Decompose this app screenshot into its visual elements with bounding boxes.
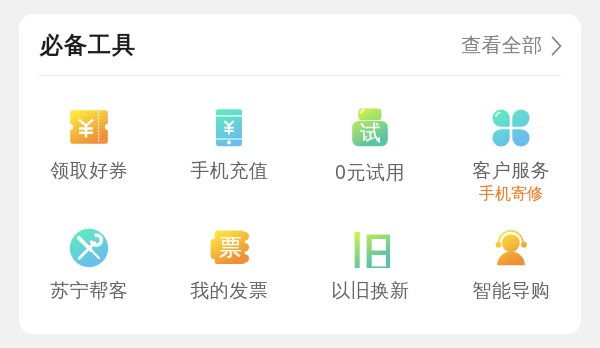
button[interactable]: 苏宁帮客 xyxy=(19,228,159,303)
button[interactable]: 查看全部 xyxy=(461,33,562,58)
other: 智能导购 xyxy=(491,228,531,268)
other: 0元试用 xyxy=(350,108,390,148)
staticText: 票 xyxy=(219,233,242,262)
button[interactable]: 手机充值 xyxy=(159,108,299,183)
button[interactable]: 以旧换新 xyxy=(299,228,440,303)
other: 以旧换新 xyxy=(350,228,390,268)
button[interactable]: 0元试用 xyxy=(299,108,440,185)
other: 手机充值 xyxy=(209,108,249,148)
staticText: 客户服务 xyxy=(472,159,550,183)
button[interactable]: 领取好券 xyxy=(19,108,159,183)
staticText: 查看全部 xyxy=(461,33,543,58)
staticText: 0元试用 xyxy=(335,159,405,185)
button[interactable]: 客户服务 xyxy=(440,108,581,204)
other: 我的发票 xyxy=(209,228,249,268)
staticText: 旧 xyxy=(350,228,390,268)
staticText: 领取好券 xyxy=(50,159,128,183)
staticText: 试 xyxy=(360,120,381,146)
other: 领取好券 xyxy=(69,108,109,148)
other: 客户服务 xyxy=(491,108,531,148)
staticText: 必备工具 xyxy=(39,31,135,60)
button[interactable]: 我的发票 xyxy=(159,228,299,303)
button[interactable]: 智能导购 xyxy=(440,228,581,303)
staticText: 手机充值 xyxy=(190,159,268,183)
staticText: 我的发票 xyxy=(190,279,268,303)
staticText: 手机寄修 xyxy=(479,184,543,204)
other: 苏宁帮客 xyxy=(69,228,109,268)
staticText: 以旧换新 xyxy=(331,279,409,303)
staticText: 苏宁帮客 xyxy=(50,279,128,303)
staticText: 智能导购 xyxy=(472,279,550,303)
